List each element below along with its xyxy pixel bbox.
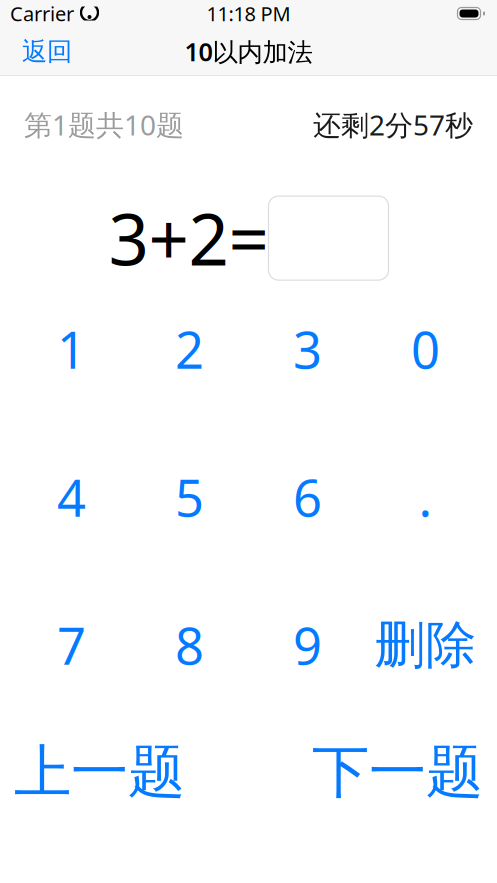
button[interactable]: 9 bbox=[248, 617, 366, 673]
staticText: 3+2= bbox=[108, 191, 268, 285]
staticText: Carrier bbox=[10, 0, 74, 27]
staticText: 0 bbox=[411, 315, 440, 383]
staticText: 2 bbox=[175, 315, 204, 383]
staticText: 6 bbox=[293, 463, 322, 531]
button[interactable]: 7 bbox=[12, 617, 130, 673]
button[interactable]: 下一题 bbox=[308, 731, 487, 813]
button[interactable]: 8 bbox=[130, 617, 248, 673]
button[interactable]: 0 bbox=[366, 321, 484, 377]
staticText: 第1题共10题 bbox=[24, 106, 184, 143]
button[interactable]: 4 bbox=[12, 469, 130, 525]
staticText: 11:18 PM bbox=[206, 0, 290, 27]
staticText: 下一题 bbox=[312, 737, 483, 807]
staticText: 10以内加法 bbox=[184, 35, 312, 68]
button[interactable]: 3 bbox=[248, 321, 366, 377]
staticText: 还剩2分57秒 bbox=[313, 106, 473, 143]
staticText: 4 bbox=[57, 463, 86, 531]
staticText: 上一题 bbox=[14, 737, 185, 807]
button[interactable]: 2 bbox=[130, 321, 248, 377]
staticText: 8 bbox=[175, 611, 204, 679]
button[interactable]: 6 bbox=[248, 469, 366, 525]
staticText: 3 bbox=[293, 315, 322, 383]
button[interactable]: 5 bbox=[130, 469, 248, 525]
button[interactable]: 删除 bbox=[366, 617, 484, 673]
staticText: . bbox=[418, 463, 432, 531]
button[interactable]: 返回 bbox=[12, 28, 82, 75]
button[interactable]: 1 bbox=[12, 321, 130, 377]
staticText: 5 bbox=[175, 463, 204, 531]
staticText: 1 bbox=[57, 315, 86, 383]
button[interactable]: . bbox=[366, 469, 484, 525]
staticText: 返回 bbox=[22, 36, 72, 67]
staticText: 9 bbox=[293, 611, 322, 679]
staticText: 7 bbox=[57, 611, 86, 679]
button[interactable]: 上一题 bbox=[10, 731, 189, 813]
staticText: 删除 bbox=[374, 614, 476, 676]
